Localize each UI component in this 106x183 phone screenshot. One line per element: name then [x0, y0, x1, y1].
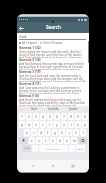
button[interactable]: 8	[68, 113, 74, 120]
staticText: God	[31, 107, 37, 111]
button[interactable]: r	[40, 121, 46, 128]
button[interactable]: z	[29, 137, 35, 144]
button[interactable]: v	[50, 137, 56, 144]
staticText: Genesis 1 (32)	[19, 46, 41, 50]
button[interactable]: Genesis 2 (14)	[17, 58, 89, 70]
staticText: x	[38, 139, 40, 143]
staticText: ,	[35, 147, 36, 151]
button[interactable]: b	[57, 137, 63, 144]
button[interactable]: 4	[40, 113, 46, 120]
button[interactable]: Godzilla	[43, 106, 63, 112]
staticText: All Chapter	[22, 41, 37, 45]
staticText: q	[21, 123, 23, 127]
staticText: w	[28, 123, 31, 127]
staticText: ‹	[20, 107, 21, 111]
button[interactable]: 0	[82, 113, 88, 120]
staticText: f	[47, 131, 49, 135]
staticText: d	[40, 131, 42, 135]
button[interactable]: y	[54, 121, 60, 128]
staticText: 5	[49, 115, 51, 119]
button[interactable]: o	[75, 121, 81, 128]
button[interactable]: q	[19, 121, 25, 128]
staticText: Search	[46, 24, 61, 30]
button[interactable]: Shift	[19, 137, 28, 144]
button[interactable]: Hide keyboard	[29, 162, 37, 170]
button[interactable]: 1	[19, 113, 25, 120]
button[interactable]: Keyboard settings	[83, 106, 89, 112]
button[interactable]: m	[71, 137, 77, 144]
button[interactable]: Back	[17, 24, 25, 32]
staticText: y	[56, 123, 58, 127]
button[interactable]: Genesis 5 (6)	[17, 94, 89, 106]
button[interactable]: w	[26, 121, 32, 128]
button[interactable]: s	[31, 129, 37, 136]
staticText: i	[71, 123, 72, 127]
staticText: t	[49, 123, 51, 127]
staticText: 0	[84, 115, 86, 119]
staticText: 6	[56, 115, 58, 119]
button[interactable]: e	[33, 121, 39, 128]
staticText: 9	[77, 115, 79, 119]
button[interactable]: k	[73, 129, 79, 136]
staticText: c	[45, 139, 47, 143]
button[interactable]: u	[61, 121, 67, 128]
staticText: a	[26, 131, 28, 135]
button[interactable]: l	[80, 129, 86, 136]
button[interactable]: ,	[32, 145, 38, 152]
staticText: z	[31, 139, 33, 143]
button[interactable]: ?123	[22, 145, 31, 152]
staticText: Genesis 5 (6)	[19, 94, 39, 98]
button[interactable]: h	[59, 129, 65, 136]
button[interactable]: Genesis 4 (11)	[17, 82, 89, 94]
staticText: .	[72, 147, 73, 151]
button[interactable]: God	[24, 106, 43, 112]
staticText: u	[63, 123, 65, 127]
button[interactable]: a	[24, 129, 30, 136]
button[interactable]: i	[68, 121, 74, 128]
button[interactable]: Done	[76, 145, 85, 152]
button[interactable]: p	[82, 121, 88, 128]
button[interactable]: 3	[33, 113, 39, 120]
staticText: s	[33, 131, 35, 135]
button[interactable]: Backspace	[78, 137, 87, 144]
staticText: 8	[70, 115, 72, 119]
button[interactable]: f	[45, 129, 51, 136]
staticText: n	[66, 139, 68, 143]
staticText: j	[69, 131, 70, 135]
staticText: v	[52, 139, 54, 143]
staticText: God created the heaven and the earth. An…	[19, 50, 86, 58]
button[interactable]: g	[52, 129, 58, 136]
staticText: Genesis 2 (14)	[19, 58, 41, 62]
staticText: ⋮	[85, 108, 88, 111]
button[interactable]: Goods	[63, 106, 83, 112]
button[interactable]: t	[47, 121, 53, 128]
staticText: g	[54, 131, 56, 135]
button[interactable]: 2	[26, 113, 32, 120]
button[interactable]: 9	[75, 113, 81, 120]
button[interactable]: d	[38, 129, 44, 136]
button[interactable]: .	[69, 145, 75, 152]
button[interactable]: Select Chapter	[40, 41, 63, 45]
staticText: And Cain said unto the Lord my punishmen…	[19, 86, 86, 94]
staticText: o	[77, 123, 79, 127]
staticText: Done	[77, 147, 84, 150]
button[interactable]: 6	[54, 113, 60, 120]
button[interactable]: More suggestions	[17, 106, 24, 112]
button[interactable]: Recents	[69, 162, 77, 170]
staticText: b	[59, 139, 61, 143]
staticText: 4	[42, 115, 44, 119]
button[interactable]: n	[64, 137, 70, 144]
button[interactable]: x	[36, 137, 42, 144]
button[interactable]: Genesis 1 (32)	[17, 46, 89, 58]
button[interactable]: 5	[47, 113, 53, 120]
button[interactable]: c	[43, 137, 49, 144]
button[interactable]: 7	[61, 113, 67, 120]
staticText: God	[19, 34, 27, 39]
button[interactable]: Genesis 3 (19)	[17, 70, 89, 82]
button[interactable]: All Chapter	[19, 41, 37, 45]
staticText: p	[84, 123, 86, 127]
button[interactable]: Home	[49, 162, 57, 170]
staticText: r	[42, 123, 44, 127]
button[interactable]: English (US)	[39, 145, 68, 152]
button[interactable]: j	[66, 129, 72, 136]
